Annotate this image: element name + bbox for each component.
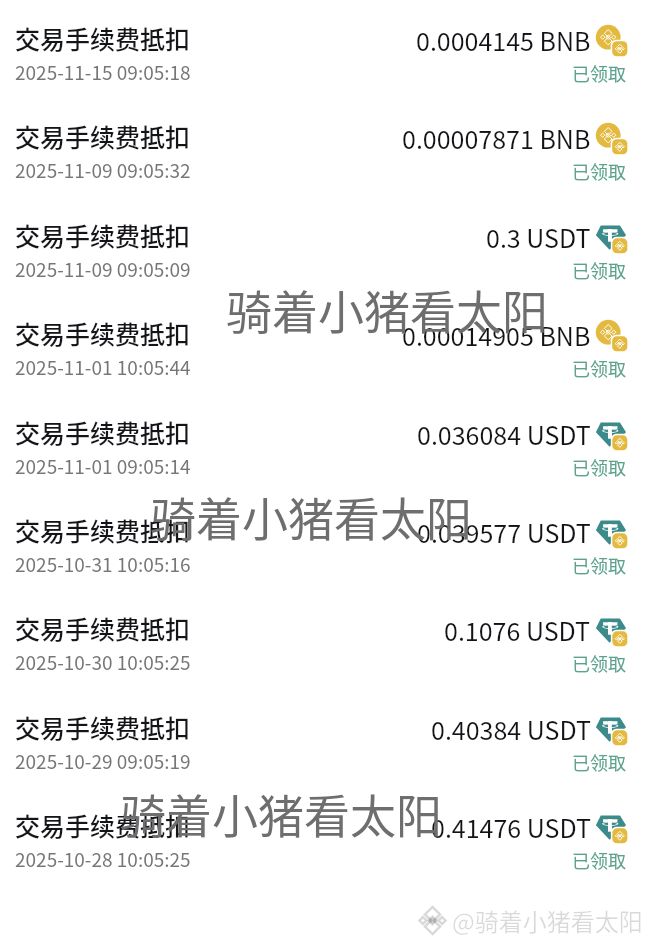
button[interactable]: 交易手续费抵扣 (0, 295, 652, 393)
other: USDT (595, 418, 628, 451)
staticText: 0.1076 USDT (444, 612, 591, 648)
other: USDT (595, 516, 628, 549)
staticText: 交易手续费抵扣 (15, 512, 191, 548)
button[interactable]: 交易手续费抵扣 (0, 689, 652, 787)
staticText: 0.039577 USDT (417, 514, 591, 550)
staticText: 交易手续费抵扣 (15, 414, 191, 450)
other: Binance logo (418, 906, 447, 935)
staticText: 0.00007871 BNB (402, 120, 591, 156)
staticText: 2025-10-28 10:05:25 (15, 845, 191, 873)
staticText: 2025-10-29 09:05:19 (15, 747, 191, 775)
staticText: 0.40384 USDT (431, 711, 591, 747)
staticText: 已领取 (572, 158, 626, 184)
staticText: 交易手续费抵扣 (15, 118, 191, 154)
staticText: 交易手续费抵扣 (15, 807, 191, 843)
button[interactable]: 交易手续费抵扣 (0, 197, 652, 295)
staticText: 交易手续费抵扣 (15, 217, 191, 253)
button[interactable]: 交易手续费抵扣 (0, 394, 652, 492)
staticText: 已领取 (572, 454, 626, 480)
staticText: 0.036084 USDT (417, 416, 591, 452)
staticText: 2025-11-09 09:05:32 (15, 156, 191, 184)
other: BNB (595, 24, 628, 57)
staticText: 骑着小猪看太阳 (226, 276, 548, 343)
staticText: 0.41476 USDT (431, 809, 591, 845)
staticText: 交易手续费抵扣 (15, 610, 191, 646)
staticText: 0.0004145 BNB (416, 22, 591, 58)
staticText: 0.3 USDT (486, 219, 591, 255)
staticText: 2025-11-15 09:05:18 (15, 58, 191, 86)
staticText: 0.00014905 BNB (402, 317, 591, 353)
staticText: 2025-10-31 10:05:16 (15, 550, 191, 578)
staticText: 已领取 (572, 749, 626, 775)
staticText: 已领取 (572, 60, 626, 86)
staticText: 2025-10-30 10:05:25 (15, 648, 191, 676)
other: USDT (595, 614, 628, 647)
other: USDT (595, 221, 628, 254)
staticText: 交易手续费抵扣 (15, 20, 191, 56)
staticText: 2025-11-01 09:05:14 (15, 452, 191, 480)
staticText: @骑着小猪看太阳 (452, 903, 643, 938)
staticText: 骑着小猪看太阳 (150, 483, 472, 550)
staticText: 交易手续费抵扣 (15, 709, 191, 745)
button[interactable]: 交易手续费抵扣 (0, 787, 652, 885)
other: BNB (595, 319, 628, 352)
staticText: 2025-11-09 09:05:09 (15, 255, 191, 283)
staticText: 已领取 (572, 650, 626, 676)
button[interactable]: 交易手续费抵扣 (0, 0, 652, 98)
staticText: 骑着小猪看太阳 (120, 780, 442, 847)
staticText: 交易手续费抵扣 (15, 315, 191, 351)
button[interactable]: 交易手续费抵扣 (0, 98, 652, 196)
staticText: 已领取 (572, 355, 626, 381)
staticText: 已领取 (572, 847, 626, 873)
other: USDT (595, 713, 628, 746)
button[interactable]: 交易手续费抵扣 (0, 492, 652, 590)
staticText: 已领取 (572, 257, 626, 283)
button[interactable]: 交易手续费抵扣 (0, 590, 652, 688)
other: BNB (595, 122, 628, 155)
staticText: 2025-11-01 10:05:44 (15, 353, 191, 381)
staticText: 已领取 (572, 552, 626, 578)
other: USDT (595, 811, 628, 844)
